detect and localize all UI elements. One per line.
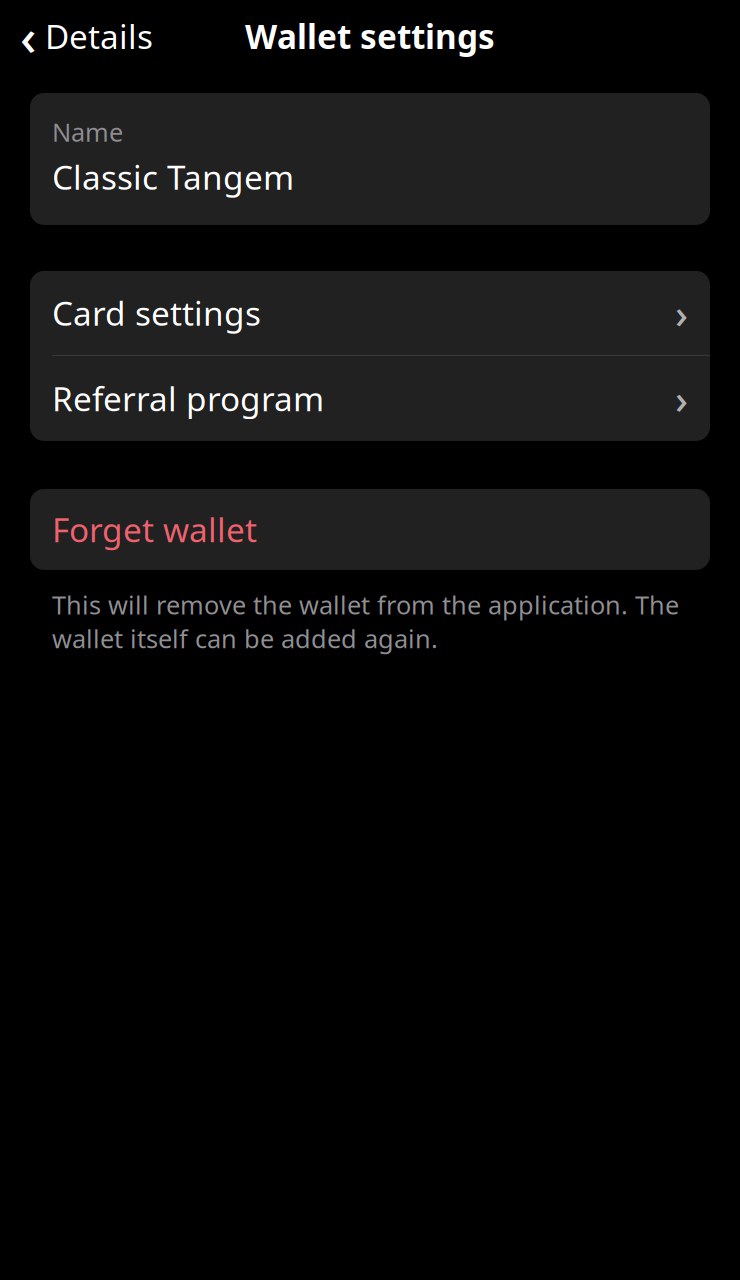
staticText: ‹ — [20, 2, 37, 70]
staticText: This will remove the wallet from the app… — [52, 588, 679, 655]
staticText: Details — [45, 14, 153, 58]
staticText: Card settings — [52, 291, 261, 335]
staticText: › — [675, 286, 688, 339]
button[interactable]: Forget wallet — [30, 489, 710, 570]
staticText: Name — [52, 115, 123, 149]
staticText: Classic Tangem — [52, 155, 294, 199]
button[interactable]: Card settings — [30, 271, 710, 355]
staticText: Forget wallet — [52, 507, 257, 552]
staticText: Wallet settings — [245, 14, 495, 58]
staticText: Referral program — [52, 376, 324, 421]
button[interactable]: Back to Details — [0, 0, 163, 74]
staticText: › — [675, 372, 688, 425]
button[interactable]: Referral program — [30, 356, 710, 441]
